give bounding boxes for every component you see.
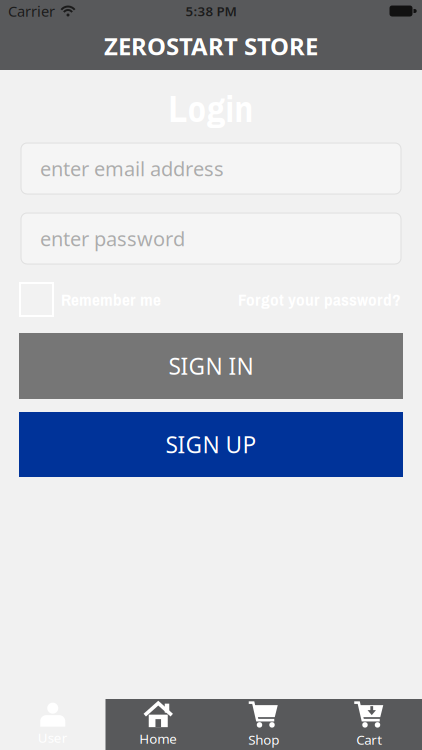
staticText: SIGN UP: [165, 429, 256, 459]
button[interactable]: Forgot your password?: [238, 288, 401, 311]
button[interactable]: enter password: [21, 213, 401, 264]
staticText: Forgot your password?: [238, 288, 401, 311]
staticText: Cart: [356, 731, 382, 748]
button[interactable]: Shop: [211, 699, 316, 750]
button[interactable]: Home: [105, 699, 211, 750]
staticText: Remember me: [61, 288, 161, 311]
staticText: enter email address: [40, 155, 224, 182]
staticText: Shop: [248, 731, 279, 748]
button[interactable]: User: [0, 699, 105, 750]
button[interactable]: SIGN IN: [19, 333, 403, 399]
button[interactable]: Cart: [316, 699, 422, 750]
staticText: SIGN IN: [168, 351, 253, 381]
button[interactable]: enter email address: [21, 143, 401, 194]
staticText: 5:38 PM: [185, 2, 236, 20]
staticText: User: [38, 729, 68, 746]
button[interactable]: Remember me: [20, 283, 161, 316]
staticText: enter password: [40, 225, 185, 252]
staticText: Login: [168, 83, 253, 134]
staticText: Home: [139, 730, 177, 747]
staticText: Carrier: [8, 1, 55, 21]
staticText: ZEROSTART STORE: [104, 30, 318, 62]
button[interactable]: SIGN UP: [19, 412, 403, 477]
